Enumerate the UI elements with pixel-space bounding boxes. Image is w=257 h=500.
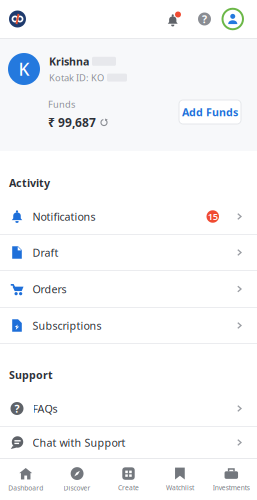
staticText: Create — [118, 483, 139, 492]
staticText: ₹ 99,687 — [48, 114, 96, 130]
staticText: 15 — [208, 210, 218, 223]
staticText: Watchlist — [166, 483, 194, 492]
button[interactable]: Help — [198, 12, 221, 25]
staticText: Kotak ID: KO — [49, 71, 104, 84]
staticText: ? — [14, 401, 19, 416]
staticText: Draft — [32, 245, 58, 260]
staticText: ? — [202, 12, 207, 26]
staticText: Discover — [64, 484, 91, 492]
staticText: Support — [9, 368, 53, 382]
button[interactable]: ? — [0, 391, 257, 427]
button[interactable]: Orders — [0, 271, 257, 308]
staticText: Add Funds — [182, 105, 238, 119]
button[interactable]: Kotak Securities — [0, 10, 35, 27]
button[interactable]: Add Funds — [179, 100, 241, 124]
staticText: Activity — [9, 176, 50, 190]
staticText: K — [18, 57, 29, 80]
staticText: Notifications — [32, 209, 95, 224]
staticText: Chat with Support — [32, 435, 125, 450]
button[interactable]: Notifications — [165, 11, 198, 27]
staticText: Subscriptions — [32, 318, 101, 333]
button[interactable]: Draft — [0, 235, 257, 271]
staticText: Investments — [213, 483, 250, 492]
staticText: Funds — [48, 98, 75, 110]
button[interactable]: Discover — [51, 458, 103, 500]
button[interactable]: Investments — [206, 458, 257, 500]
button[interactable]: Create — [103, 458, 154, 500]
button[interactable]: Watchlist — [154, 458, 206, 500]
button[interactable]: Dashboard — [0, 458, 51, 500]
staticText: Orders — [32, 282, 66, 296]
button[interactable]: Profile — [221, 8, 257, 30]
staticText: Krishna — [49, 54, 89, 68]
button[interactable]: Notifications — [0, 199, 257, 235]
button[interactable]: Subscriptions — [0, 308, 257, 344]
staticText: FAQs — [32, 401, 57, 416]
staticText: Dashboard — [8, 484, 43, 492]
button[interactable]: Chat with Support — [0, 427, 257, 458]
